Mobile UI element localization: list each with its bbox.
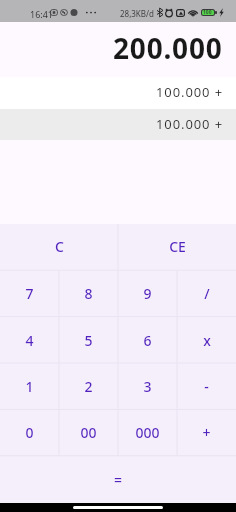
staticText: 16:41: [30, 8, 54, 20]
staticText: +: [202, 423, 211, 442]
button[interactable]: 8: [59, 270, 118, 316]
button[interactable]: 4: [0, 317, 59, 363]
staticText: 2: [84, 377, 93, 396]
button[interactable]: -: [177, 363, 236, 409]
button[interactable]: x: [177, 317, 236, 363]
button[interactable]: 1: [0, 363, 59, 409]
button[interactable]: 00: [59, 409, 118, 455]
staticText: 100.000 +: [156, 83, 224, 101]
button[interactable]: +: [177, 409, 236, 455]
staticText: 5: [84, 331, 93, 350]
staticText: 9: [143, 284, 152, 303]
button[interactable]: =: [0, 456, 236, 503]
button[interactable]: 9: [118, 270, 177, 316]
staticText: 100: [203, 9, 212, 16]
staticText: /: [204, 284, 210, 303]
button[interactable]: 100.000 +: [0, 77, 236, 109]
button[interactable]: 100.000 +: [0, 109, 236, 140]
button[interactable]: C: [0, 224, 118, 270]
staticText: 28,3KB/d: [120, 8, 154, 19]
button[interactable]: CE: [118, 224, 236, 270]
staticText: 6: [143, 331, 152, 350]
button[interactable]: 0: [0, 409, 59, 455]
staticText: 3: [143, 377, 152, 396]
button[interactable]: 3: [118, 363, 177, 409]
button[interactable]: 2: [59, 363, 118, 409]
staticText: x: [203, 331, 211, 350]
staticText: 100.000 +: [156, 115, 224, 133]
staticText: 7: [25, 284, 34, 303]
button[interactable]: /: [177, 270, 236, 316]
staticText: C: [55, 237, 64, 256]
staticText: CE: [169, 237, 186, 256]
staticText: =: [114, 470, 123, 489]
button[interactable]: 6: [118, 317, 177, 363]
button[interactable]: 000: [118, 409, 177, 455]
staticText: 000: [135, 423, 160, 442]
staticText: 8: [84, 284, 93, 303]
staticText: -: [204, 377, 209, 396]
staticText: 1: [25, 377, 34, 396]
button[interactable]: 7: [0, 270, 59, 316]
button[interactable]: 5: [59, 317, 118, 363]
staticText: 200.000: [113, 29, 223, 67]
staticText: 00: [80, 423, 97, 442]
staticText: 0: [25, 423, 34, 442]
staticText: 4: [25, 331, 34, 350]
